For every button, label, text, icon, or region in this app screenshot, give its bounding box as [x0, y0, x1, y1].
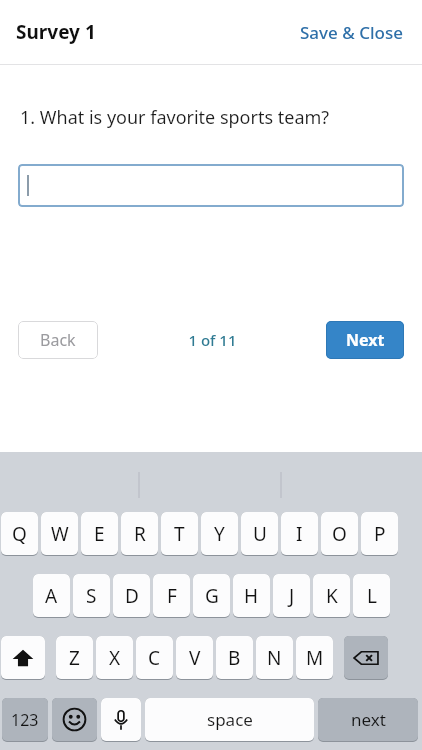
button[interactable]: Emoji: [52, 698, 97, 741]
button[interactable]: V: [176, 636, 213, 679]
staticText: Survey 1: [16, 19, 96, 45]
button[interactable]: I: [281, 512, 318, 555]
staticText: Q: [12, 521, 27, 547]
staticText: K: [326, 583, 338, 609]
staticText: V: [189, 645, 201, 671]
staticText: C: [148, 645, 161, 671]
button[interactable]: C: [136, 636, 173, 679]
staticText: 1. What is your favorite sports team?: [20, 105, 330, 130]
button[interactable]: O: [321, 512, 358, 555]
staticText: 123: [11, 709, 39, 731]
button[interactable]: D: [113, 574, 150, 617]
button[interactable]: Z: [56, 636, 93, 679]
staticText: I: [296, 521, 303, 547]
button[interactable]: Save & Close: [297, 18, 406, 47]
staticText: space: [207, 708, 253, 731]
staticText: B: [228, 645, 241, 671]
button[interactable]: L: [353, 574, 390, 617]
staticText: U: [253, 521, 267, 547]
button[interactable]: N: [256, 636, 293, 679]
button[interactable]: Next: [326, 321, 404, 359]
button[interactable]: 123: [2, 698, 48, 741]
staticText: T: [174, 521, 185, 547]
button[interactable]: Backspace: [344, 636, 388, 679]
staticText: A: [45, 583, 58, 609]
button[interactable]: Shift: [1, 636, 45, 679]
staticText: F: [167, 583, 177, 609]
staticText: Back: [40, 329, 76, 351]
button[interactable]: X: [96, 636, 133, 679]
button[interactable]: K: [313, 574, 350, 617]
staticText: W: [51, 521, 69, 547]
button[interactable]: Q: [1, 512, 38, 555]
staticText: D: [125, 583, 139, 609]
staticText: L: [367, 583, 377, 609]
button[interactable]: H: [233, 574, 270, 617]
staticText: M: [306, 645, 324, 671]
staticText: P: [374, 521, 386, 547]
staticText: O: [332, 521, 347, 547]
staticText: E: [94, 521, 105, 547]
button[interactable]: J: [273, 574, 310, 617]
button[interactable]: U: [241, 512, 278, 555]
staticText: X: [109, 645, 121, 671]
staticText: Save & Close: [300, 21, 403, 44]
staticText: 1 of 11: [188, 330, 237, 350]
staticText: Next: [346, 329, 385, 351]
button[interactable]: E: [81, 512, 118, 555]
button[interactable]: P: [361, 512, 398, 555]
button[interactable]: B: [216, 636, 253, 679]
button[interactable]: G: [193, 574, 230, 617]
staticText: G: [205, 583, 219, 609]
staticText: J: [289, 583, 295, 609]
button[interactable]: space: [145, 698, 314, 741]
button[interactable]: W: [41, 512, 78, 555]
staticText: R: [134, 521, 146, 547]
staticText: Y: [214, 521, 225, 547]
staticText: H: [244, 583, 259, 609]
staticText: Z: [69, 645, 80, 671]
staticText: S: [86, 583, 97, 609]
button[interactable]: Voice input: [101, 698, 141, 741]
button[interactable]: Y: [201, 512, 238, 555]
button[interactable]: M: [296, 636, 333, 679]
button[interactable]: Back: [18, 321, 98, 359]
button[interactable]: T: [161, 512, 198, 555]
button[interactable]: S: [73, 574, 110, 617]
button[interactable]: [18, 164, 404, 207]
button[interactable]: R: [121, 512, 158, 555]
button[interactable]: A: [33, 574, 70, 617]
staticText: next: [351, 708, 386, 731]
button[interactable]: F: [153, 574, 190, 617]
staticText: N: [267, 645, 282, 671]
button[interactable]: next: [318, 698, 418, 741]
